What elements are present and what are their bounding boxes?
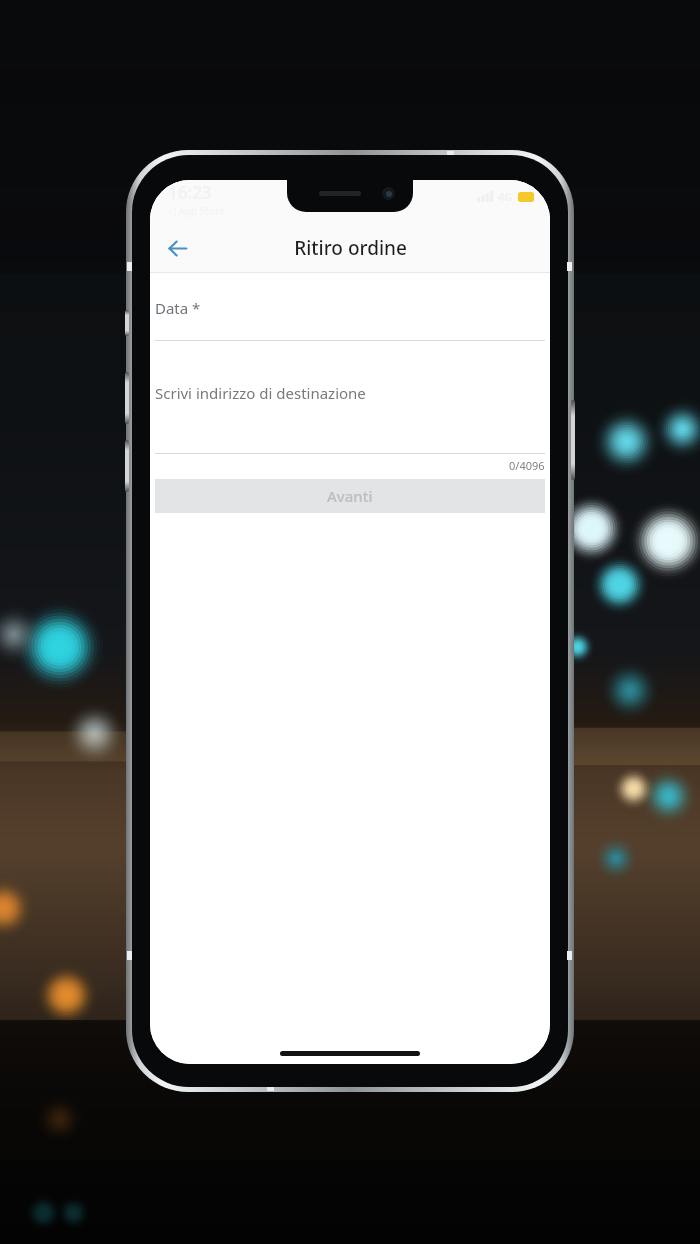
staticText: 4G xyxy=(498,189,513,204)
staticText: Ritiro ordine xyxy=(294,235,407,261)
staticText: Avanti xyxy=(327,486,373,506)
button[interactable]: Indietro xyxy=(154,225,200,271)
staticText: 16:23 xyxy=(168,181,212,204)
button[interactable]: Data * xyxy=(155,298,545,341)
button[interactable]: Scrivi indirizzo di destinazione xyxy=(155,383,545,454)
button[interactable]: Avanti xyxy=(155,479,545,513)
staticText: Scrivi indirizzo di destinazione xyxy=(155,383,366,403)
staticText: Data * xyxy=(155,298,201,318)
staticText: 0/4096 xyxy=(509,458,545,473)
